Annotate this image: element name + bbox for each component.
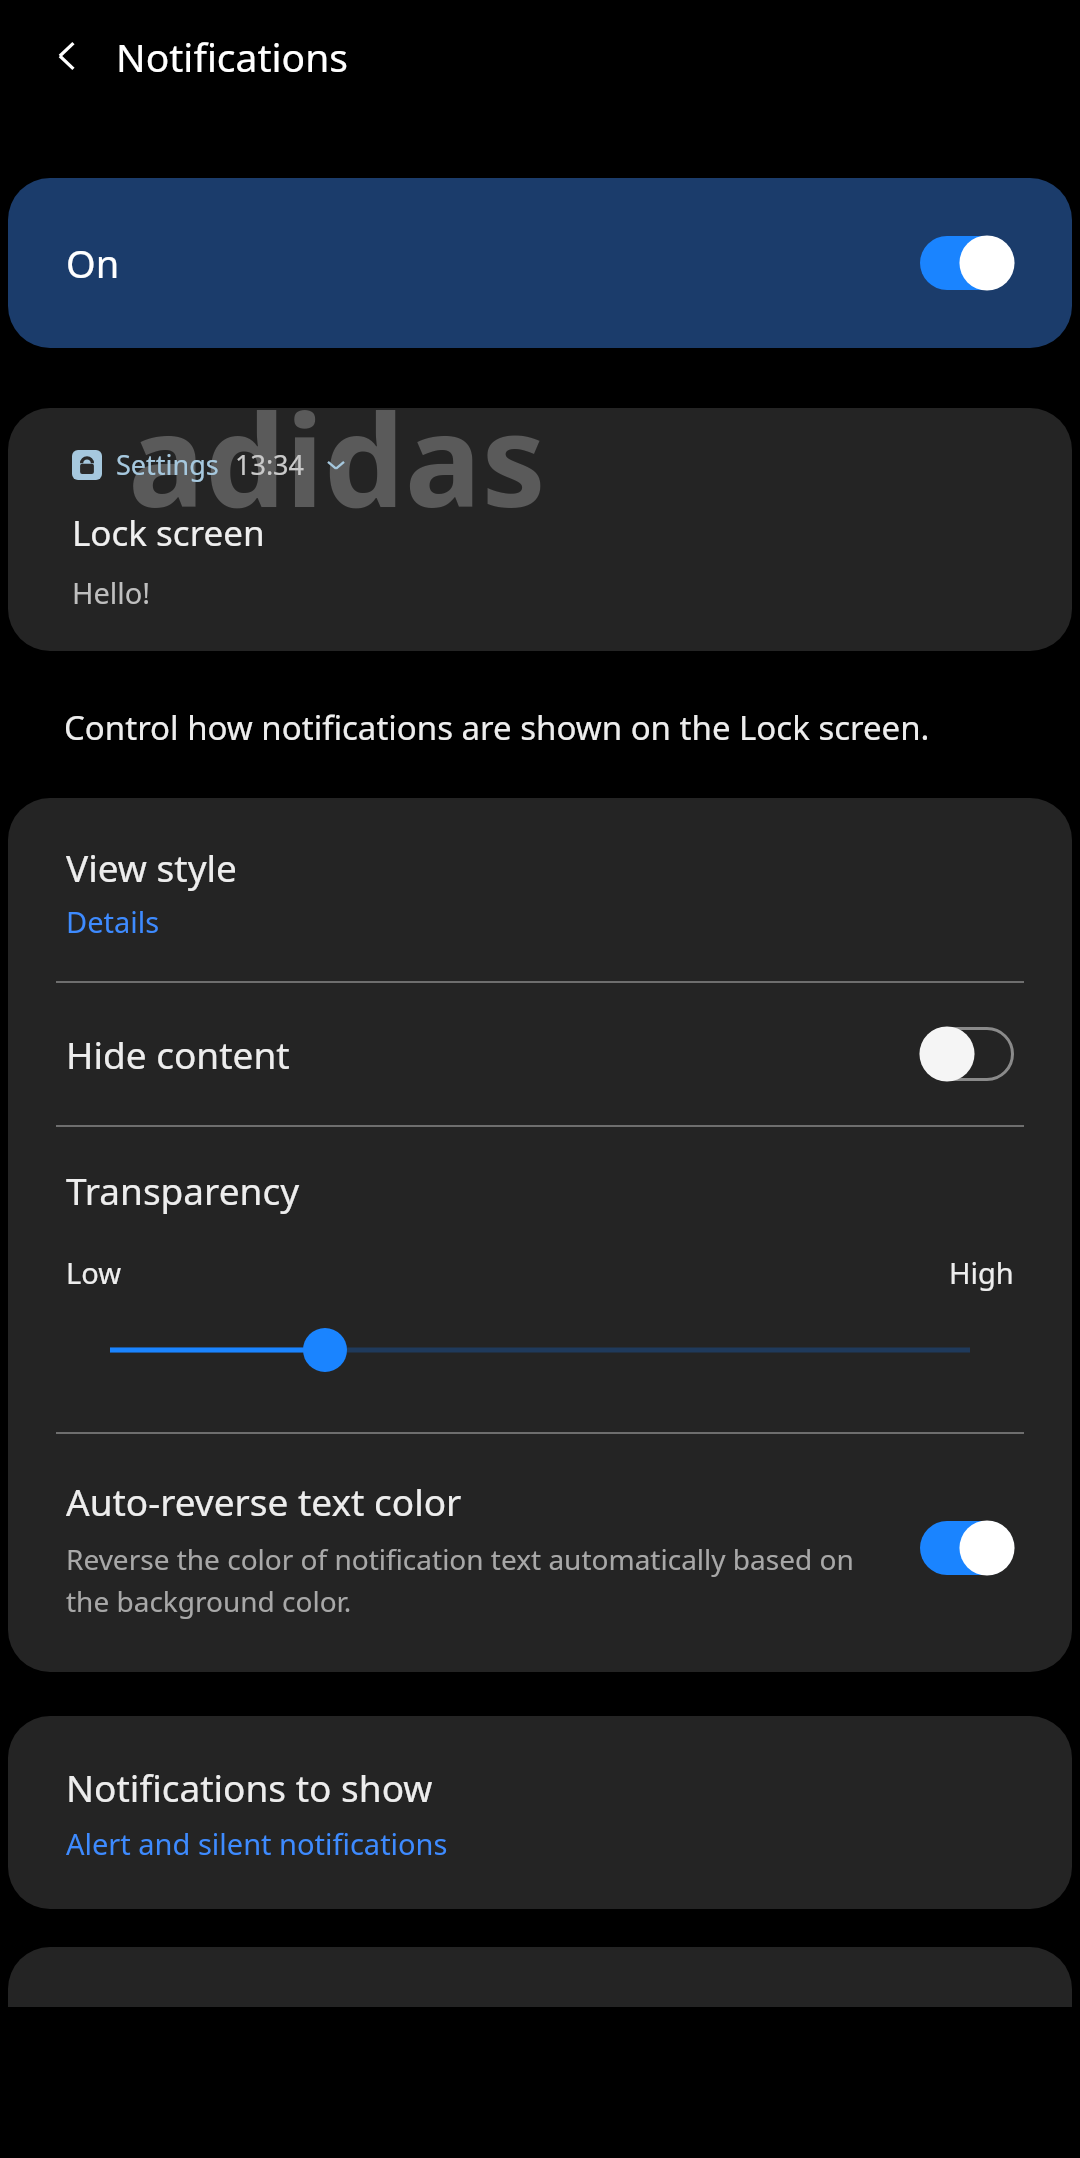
button[interactable]: Expand notification [323, 452, 349, 478]
button[interactable]: On [8, 178, 1072, 348]
button[interactable]: Toggle off [920, 1027, 1014, 1081]
staticText: Hide content [66, 1029, 290, 1079]
button[interactable]: Notifications to show [8, 1716, 1072, 1909]
button[interactable]: Back [40, 28, 96, 84]
staticText: 13:34 [235, 446, 305, 483]
staticText: Details [66, 902, 160, 941]
staticText: Auto-reverse text color [66, 1476, 462, 1526]
button[interactable]: Hide content [8, 983, 1072, 1125]
staticText: Low [66, 1253, 121, 1292]
button[interactable]: Toggle on [920, 1521, 1014, 1575]
button[interactable]: Transparency slider [66, 1320, 1014, 1380]
button[interactable]: adidas [8, 408, 1072, 651]
staticText: Hello! [72, 573, 151, 612]
staticText: View style [66, 842, 237, 892]
staticText: Reverse the color of notification text a… [66, 1540, 890, 1620]
button[interactable]: View style [8, 798, 1072, 981]
button[interactable]: Toggle on [920, 236, 1014, 290]
button[interactable]: Auto-reverse text color [8, 1434, 1072, 1672]
staticText: Lock screen [72, 509, 265, 557]
staticText: Transparency [66, 1165, 300, 1215]
staticText: On [66, 237, 120, 289]
staticText: Settings [116, 446, 219, 483]
staticText: Notifications [116, 30, 348, 83]
staticText: Notifications to show [66, 1762, 433, 1812]
staticText: High [949, 1253, 1014, 1292]
staticText: adidas [128, 408, 546, 544]
staticText: Alert and silent notifications [66, 1824, 448, 1863]
staticText: Control how notifications are shown on t… [64, 705, 930, 750]
button[interactable] [8, 1947, 1072, 2007]
